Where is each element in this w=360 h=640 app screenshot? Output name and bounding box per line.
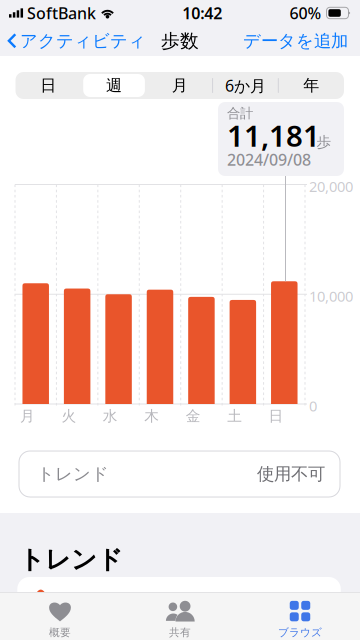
staticText: 2024/09/08: [227, 149, 311, 170]
button[interactable]: データを追加: [243, 26, 360, 56]
staticText: 60%: [289, 2, 321, 24]
staticText: 日: [40, 76, 56, 95]
staticText: SoftBank: [27, 2, 96, 24]
staticText: 11,181: [227, 116, 320, 155]
staticText: ブラウズ: [278, 626, 322, 639]
staticText: 土: [227, 407, 242, 425]
staticText: 0: [309, 396, 317, 415]
staticText: 年: [303, 76, 319, 95]
button[interactable]: アクティビティ: [0, 26, 146, 56]
staticText: 週: [106, 76, 122, 95]
staticText: 歩数: [161, 29, 199, 52]
staticText: 使用不可: [257, 463, 325, 485]
staticText: 合計: [227, 105, 253, 121]
staticText: 月: [20, 407, 35, 425]
staticText: 金: [186, 407, 201, 425]
staticText: 月: [172, 76, 188, 95]
staticText: 日: [269, 407, 284, 425]
staticText: 木: [144, 407, 159, 425]
button[interactable]: 日: [15, 72, 81, 99]
button[interactable]: トレンド: [19, 451, 340, 497]
staticText: 歩: [316, 133, 331, 151]
staticText: 水: [103, 407, 118, 425]
staticText: データを追加: [243, 30, 348, 52]
button[interactable]: 週: [81, 72, 147, 99]
staticText: 10:42: [182, 2, 222, 24]
button[interactable]: 月: [147, 72, 213, 99]
button[interactable]: 概要: [0, 592, 120, 640]
staticText: 火: [61, 407, 76, 425]
button[interactable]: 年: [278, 72, 344, 99]
staticText: 共有: [169, 626, 191, 639]
staticText: アクティビティ: [20, 30, 146, 52]
staticText: 概要: [49, 626, 71, 639]
staticText: 20,000: [309, 176, 353, 196]
staticText: 10,000: [309, 286, 353, 306]
button[interactable]: 共有: [120, 592, 240, 640]
button[interactable]: ブラウズ: [240, 592, 360, 640]
staticText: トレンド: [37, 463, 109, 485]
staticText: トレンド: [19, 544, 123, 575]
button[interactable]: 6か月: [213, 72, 278, 99]
staticText: 6か月: [225, 75, 266, 96]
